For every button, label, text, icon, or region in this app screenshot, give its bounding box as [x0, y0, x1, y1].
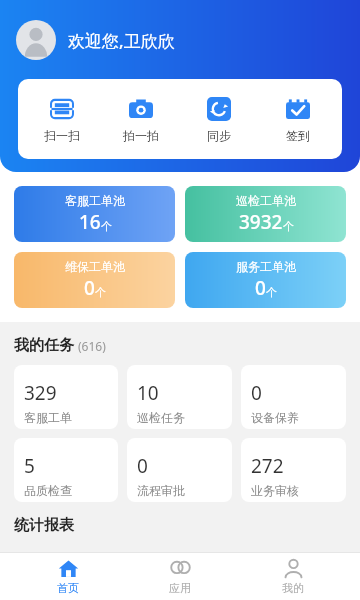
- button[interactable]: 5: [14, 438, 118, 502]
- staticText: 个: [95, 285, 106, 299]
- staticText: 维保工单池: [65, 259, 125, 274]
- button[interactable]: 签到: [263, 92, 333, 147]
- staticText: 我的任务: [14, 336, 74, 355]
- button[interactable]: 0: [127, 438, 232, 502]
- staticText: 0: [255, 275, 266, 301]
- staticText: 272: [251, 453, 284, 479]
- button[interactable]: 巡检工单池: [185, 186, 346, 242]
- button[interactable]: 应用: [135, 553, 225, 600]
- staticText: 拍一拍: [123, 128, 159, 143]
- staticText: 客服工单池: [65, 193, 125, 208]
- staticText: 签到: [286, 128, 310, 143]
- button[interactable]: Avatar: [16, 20, 56, 60]
- staticText: 客服工单: [24, 410, 72, 425]
- staticText: 个: [101, 219, 112, 233]
- button[interactable]: 扫一扫: [27, 92, 97, 147]
- staticText: 0: [251, 380, 262, 406]
- staticText: 0: [137, 453, 148, 479]
- staticText: 应用: [169, 581, 191, 595]
- staticText: 329: [24, 380, 57, 406]
- button[interactable]: 维保工单池: [14, 252, 175, 308]
- staticText: 个: [283, 219, 294, 233]
- button[interactable]: 拍一拍: [106, 92, 176, 147]
- staticText: 首页: [57, 581, 79, 595]
- staticText: 业务审核: [251, 483, 299, 498]
- staticText: 品质检查: [24, 483, 72, 498]
- staticText: 同步: [207, 128, 231, 143]
- staticText: 10: [137, 380, 159, 406]
- button[interactable]: 服务工单池: [185, 252, 346, 308]
- staticText: 服务工单池: [236, 259, 296, 274]
- button[interactable]: 客服工单池: [14, 186, 175, 242]
- staticText: 欢迎您,卫欣欣: [68, 29, 175, 52]
- button[interactable]: 10: [127, 365, 232, 429]
- button[interactable]: 首页: [23, 553, 113, 600]
- staticText: 个: [266, 285, 277, 299]
- staticText: 扫一扫: [44, 128, 80, 143]
- staticText: 0: [84, 275, 95, 301]
- staticText: 巡检任务: [137, 410, 185, 425]
- button[interactable]: 272: [241, 438, 346, 502]
- staticText: 5: [24, 453, 35, 479]
- staticText: 3932: [239, 209, 283, 235]
- button[interactable]: 329: [14, 365, 118, 429]
- staticText: 巡检工单池: [236, 193, 296, 208]
- button[interactable]: 同步: [184, 92, 254, 147]
- staticText: 统计报表: [14, 516, 74, 535]
- staticText: (616): [78, 338, 106, 354]
- staticText: 16: [79, 209, 101, 235]
- staticText: 我的: [282, 581, 304, 595]
- button[interactable]: 0: [241, 365, 346, 429]
- button[interactable]: 我的: [248, 553, 338, 600]
- staticText: 流程审批: [137, 483, 185, 498]
- staticText: 设备保养: [251, 410, 299, 425]
